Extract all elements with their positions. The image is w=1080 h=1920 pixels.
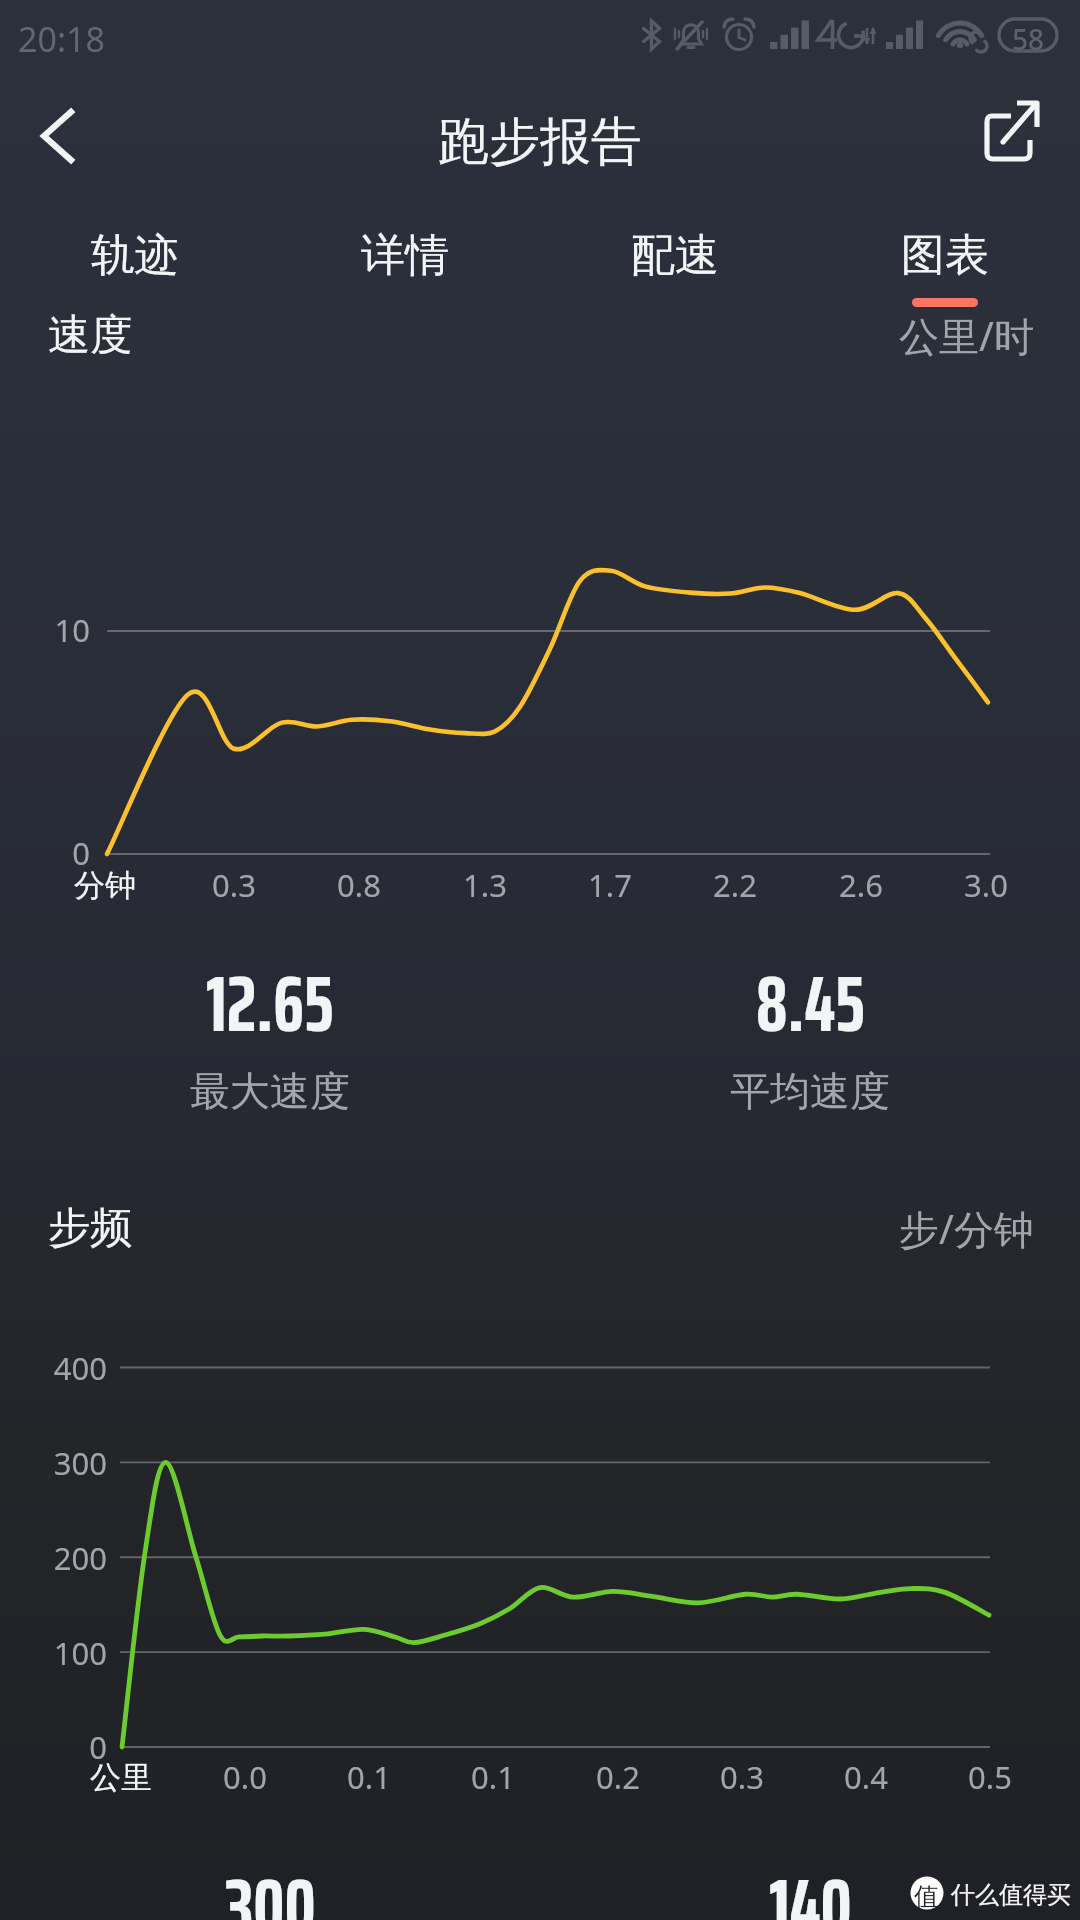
staticText: 0.3 [184,864,284,906]
staticText: 配速 [631,228,719,283]
staticText: 0.0 [195,1756,295,1798]
staticText: 0.5 [940,1756,1040,1798]
staticText: 0.8 [309,864,409,906]
staticText: 1.3 [435,864,535,906]
staticText: 分钟 [74,866,136,905]
staticText: 200 [0,1537,107,1579]
staticText: 1.7 [560,864,660,906]
button[interactable]: 图表 [810,198,1080,316]
staticText: 公里/时 [899,308,1034,363]
staticText: 0.3 [692,1756,792,1798]
staticText: 平均速度 [730,1066,890,1116]
staticText: 跑步报告 [0,110,1080,174]
staticText: 3.0 [936,864,1036,906]
staticText: 值 [914,1881,939,1912]
staticText: 详情 [361,228,449,283]
staticText: 最大速度 [190,1066,350,1116]
staticText: 400 [0,1347,107,1389]
staticText: 轨迹 [91,228,179,283]
staticText: 公里 [90,1758,152,1797]
button[interactable]: Back [12,88,108,184]
button[interactable]: 详情 [270,198,540,316]
staticText: 步/分钟 [899,1201,1034,1256]
button[interactable]: Share [962,88,1058,184]
staticText: 10 [0,609,90,651]
staticText: 0.2 [568,1756,668,1798]
staticText: 140 [769,1845,852,1920]
button[interactable]: 配速 [540,198,810,316]
staticText: 步频 [48,1202,132,1255]
staticText: 0 [0,1726,107,1768]
staticText: 2.6 [811,864,911,906]
staticText: 300 [0,1442,107,1484]
staticText: 8.45 [756,942,865,1065]
staticText: 100 [0,1632,107,1674]
staticText: 2.2 [685,864,785,906]
staticText: 什么值得买 [951,1880,1071,1910]
staticText: 速度 [48,309,132,362]
staticText: 0 [0,832,90,874]
staticText: 0.4 [816,1756,916,1798]
staticText: 20:18 [18,16,105,62]
staticText: 300 [225,1845,316,1920]
staticText: 图表 [901,228,989,283]
staticText: 0.1 [443,1756,543,1798]
staticText: 58 [999,20,1057,58]
staticText: 0.1 [319,1756,419,1798]
button[interactable]: 轨迹 [0,198,270,316]
staticText: 12.65 [206,942,334,1065]
